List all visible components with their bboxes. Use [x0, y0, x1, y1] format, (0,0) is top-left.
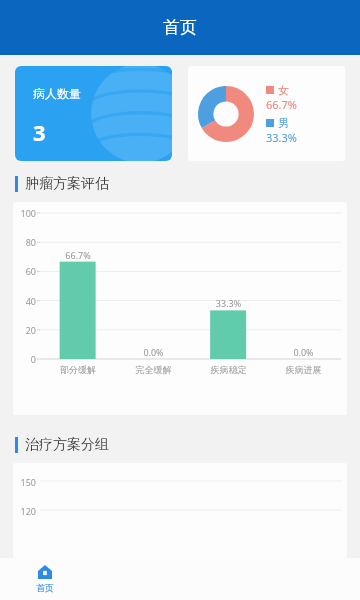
- staticText: 疾病进展: [266, 364, 341, 375]
- staticText: 120: [13, 505, 36, 517]
- staticText: 3: [33, 117, 46, 147]
- staticText: 60: [13, 265, 36, 277]
- staticText: 首页: [36, 582, 54, 593]
- staticText: 100: [13, 207, 36, 219]
- staticText: 20: [13, 324, 36, 336]
- staticText: 女: [278, 83, 289, 97]
- staticText: 0: [13, 353, 36, 365]
- staticText: 66.7%: [40, 249, 116, 261]
- staticText: 男: [278, 116, 289, 130]
- staticText: 治疗方案分组: [25, 436, 109, 454]
- button[interactable]: 女: [188, 66, 345, 161]
- staticText: 0.0%: [266, 346, 341, 358]
- staticText: 部分缓解: [40, 364, 116, 375]
- staticText: 疾病稳定: [191, 364, 266, 375]
- staticText: 0.0%: [116, 346, 191, 358]
- staticText: 150: [13, 476, 36, 488]
- staticText: 33.3%: [191, 297, 266, 309]
- staticText: 完全缓解: [116, 364, 191, 375]
- staticText: 病人数量: [33, 86, 81, 101]
- staticText: 首页: [163, 17, 197, 38]
- staticText: 80: [13, 236, 36, 248]
- button[interactable]: 病人数量: [15, 66, 172, 161]
- staticText: 肿瘤方案评估: [25, 175, 109, 193]
- staticText: 66.7%: [266, 97, 297, 112]
- staticText: 33.3%: [266, 130, 297, 145]
- button[interactable]: 首页: [0, 558, 90, 600]
- other: 首页: [38, 565, 52, 579]
- staticText: 40: [13, 295, 36, 307]
